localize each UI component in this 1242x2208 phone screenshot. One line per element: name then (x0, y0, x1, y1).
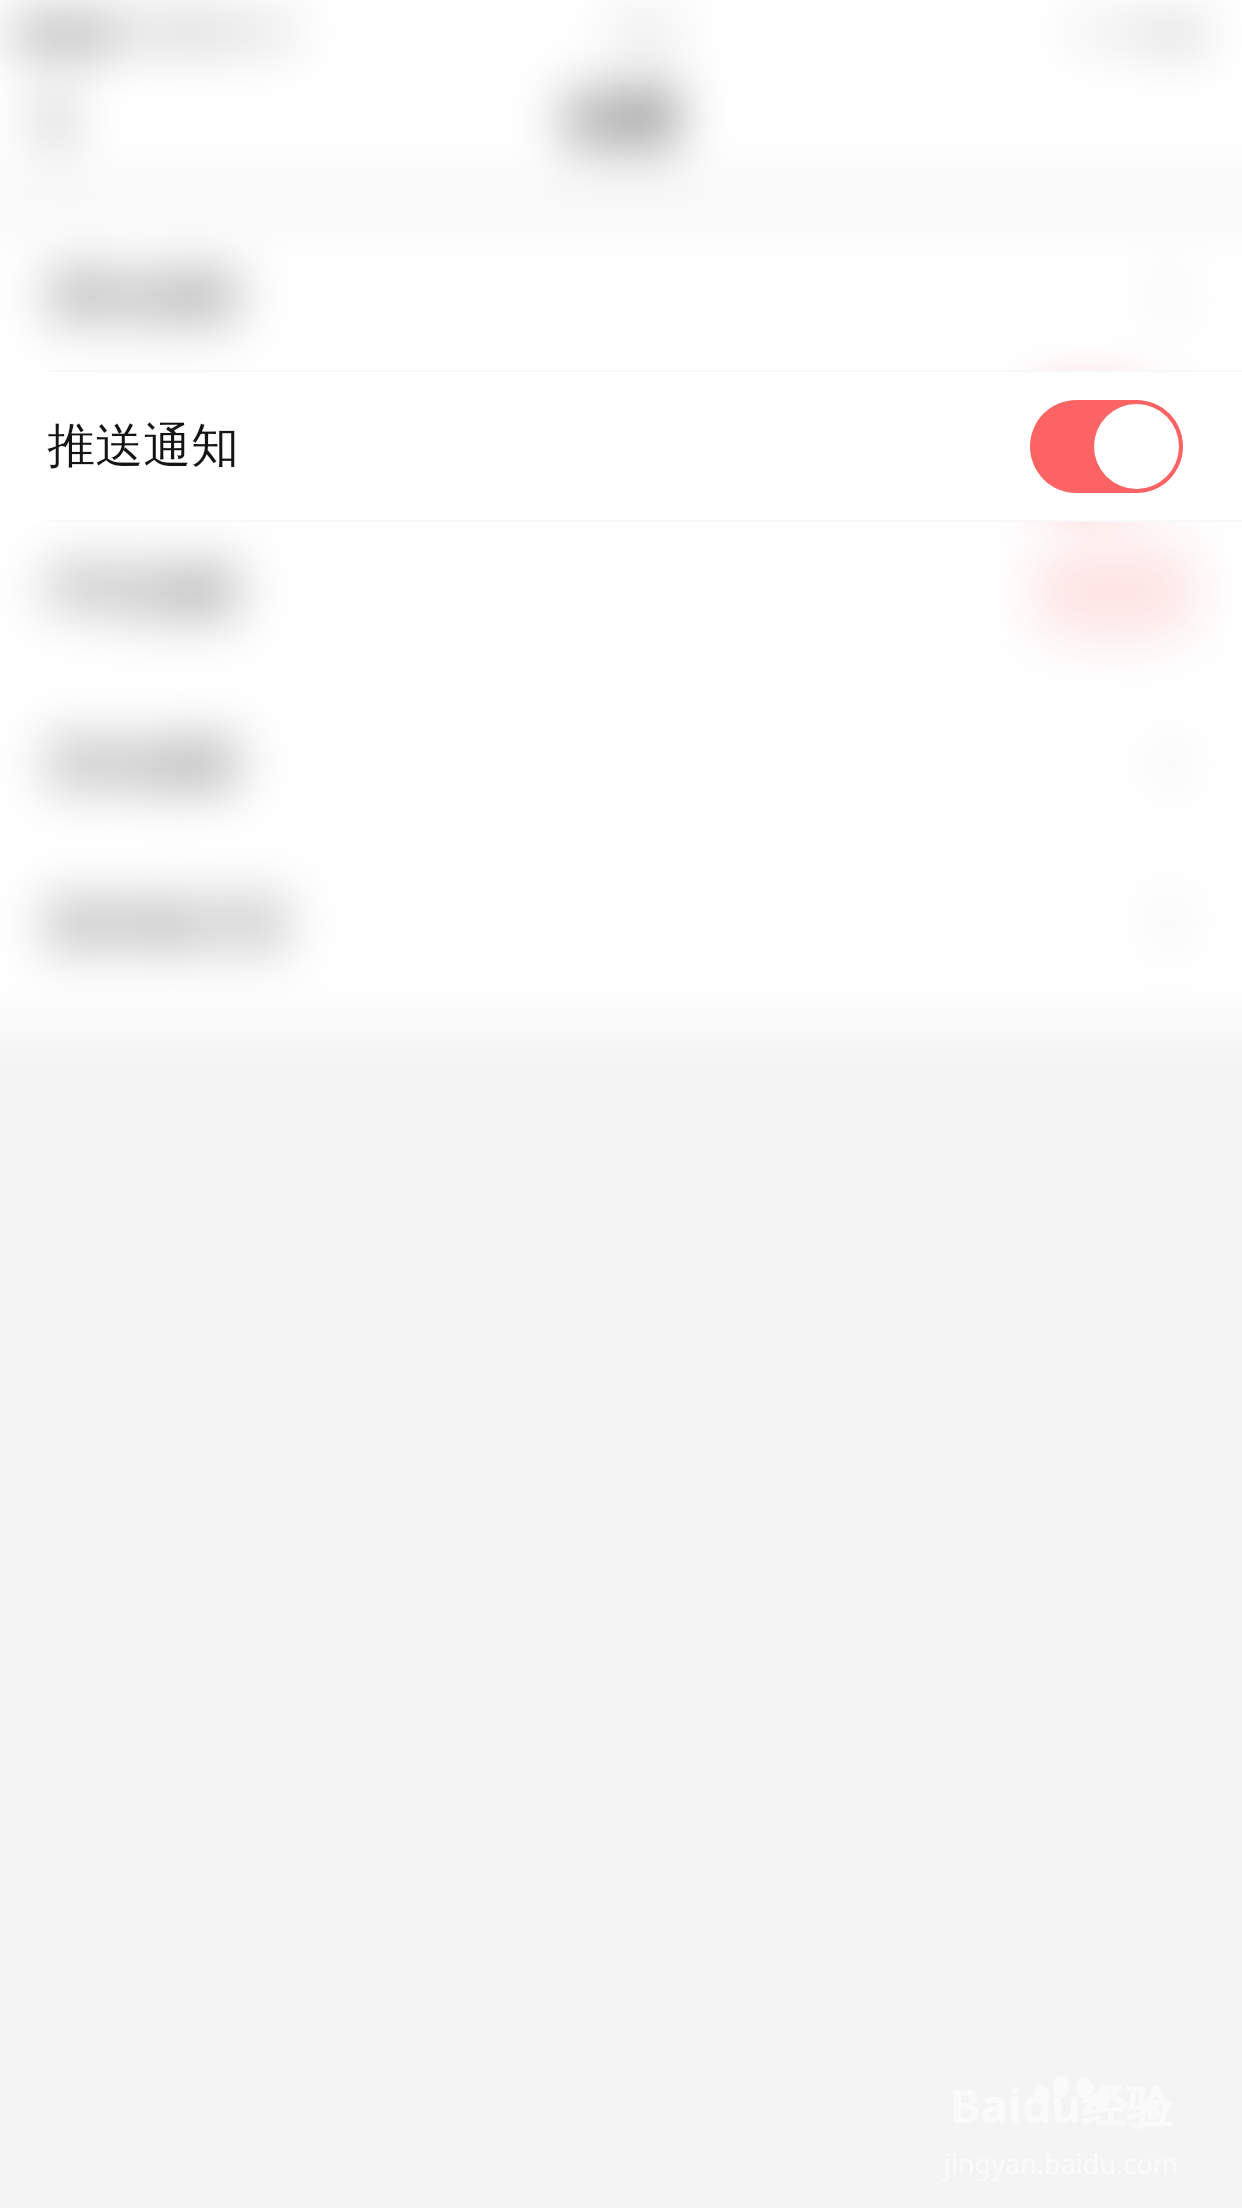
button[interactable]: 推送通知 (0, 370, 1242, 522)
staticText: 声音提醒 (47, 561, 239, 621)
staticText: 设置 (563, 84, 679, 157)
staticText: 通知提醒 (47, 266, 239, 326)
button[interactable]: Back (10, 75, 100, 165)
button[interactable]: Switch (1030, 400, 1183, 493)
button[interactable]: 推送通知 (0, 370, 1242, 522)
staticText: 夜间免打扰 (47, 895, 287, 955)
staticText: 推送通知 (47, 416, 239, 476)
button[interactable]: 通知提醒 (0, 222, 1242, 370)
button[interactable]: Switch (1030, 545, 1200, 637)
button[interactable]: 声音提醒 (0, 522, 1242, 660)
button[interactable]: Switch (1030, 400, 1183, 493)
staticText: ●●●● 中国移动 4G (14, 10, 294, 51)
staticText: 震动提醒 (47, 734, 239, 794)
button[interactable]: 震动提醒 (0, 660, 1242, 868)
button[interactable]: 夜间免打扰 (0, 868, 1242, 982)
staticText: 推送通知 (47, 416, 239, 476)
staticText: 100% ▮▮▮ (1068, 10, 1202, 51)
